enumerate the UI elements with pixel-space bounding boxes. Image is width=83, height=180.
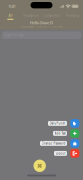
- button[interactable]: Incomplete: [21, 14, 42, 20]
- button[interactable]: Close menu: [33, 160, 46, 172]
- button[interactable]: Completed: [41, 14, 62, 20]
- staticText: Completed: [44, 14, 60, 17]
- button[interactable]: Add Task: [70, 129, 79, 138]
- staticText: Search for tasks: [5, 33, 24, 37]
- staticText: 9:41: [8, 4, 15, 9]
- button[interactable]: All: [0, 14, 21, 20]
- staticText: Hello Dave D: [30, 20, 53, 25]
- button[interactable]: Add Task: [53, 131, 67, 136]
- staticText: All: [8, 14, 12, 17]
- button[interactable]: Logout: [70, 149, 79, 158]
- button[interactable]: Daily Punch: [70, 119, 79, 128]
- button[interactable]: Daily Punch: [48, 121, 67, 126]
- staticText: Logout: [55, 152, 65, 155]
- staticText: Username: 10018, 11:58 PM: [21, 25, 62, 28]
- staticText: Incomplete: [23, 14, 39, 17]
- staticText: Add Task: [54, 132, 65, 135]
- staticText: Change Password: [41, 142, 65, 145]
- button[interactable]: Pending: [62, 14, 83, 20]
- staticText: Daily Punch: [49, 122, 65, 125]
- button[interactable]: Change Password: [70, 139, 79, 148]
- button[interactable]: Change Password: [40, 141, 67, 146]
- button[interactable]: Logout: [54, 151, 67, 156]
- staticText: Pending: [66, 14, 79, 17]
